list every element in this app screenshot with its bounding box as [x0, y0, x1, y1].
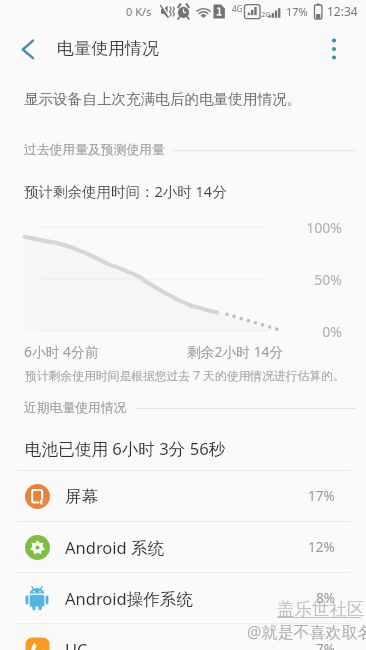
button[interactable]: Android操作系统: [0, 573, 366, 623]
staticText: 盖乐世社区: [277, 598, 365, 620]
staticText: 6小时 4分前: [24, 342, 99, 361]
staticText: 屏幕: [65, 486, 98, 507]
staticText: 17%: [308, 487, 335, 505]
staticText: @就是不喜欢取名: [247, 621, 366, 643]
staticText: 0 K/s: [126, 4, 152, 19]
staticText: 预计剩余使用时间是根据您过去 7 天的使用情况进行估算的。: [25, 367, 345, 383]
staticText: 过去使用量及预测使用量: [24, 142, 165, 158]
button[interactable]: UC: [0, 624, 366, 650]
staticText: 4G: [232, 3, 243, 14]
staticText: 剩余2小时 14分: [187, 342, 284, 361]
staticText: 显示设备自上次充满电后的电量使用情况。: [24, 90, 302, 108]
button[interactable]: More options: [313, 28, 354, 69]
staticText: 100%: [262, 218, 342, 237]
staticText: 17%: [286, 4, 308, 19]
staticText: 电池已使用 6小时 3分 56秒: [25, 437, 226, 460]
staticText: 0%: [262, 322, 342, 341]
staticText: 7%: [316, 640, 335, 650]
button[interactable]: Back: [7, 28, 48, 69]
staticText: 50%: [262, 270, 342, 289]
button[interactable]: 屏幕: [0, 471, 366, 521]
staticText: UC: [65, 638, 88, 650]
staticText: 12%: [308, 538, 335, 556]
button[interactable]: Android 系统: [0, 522, 366, 572]
staticText: 8%: [316, 589, 335, 607]
staticText: Android 系统: [65, 536, 165, 559]
staticText: 电量使用情况: [57, 38, 159, 59]
staticText: 12:34: [327, 3, 358, 19]
staticText: Android操作系统: [65, 587, 193, 610]
staticText: 2G: [261, 9, 271, 19]
staticText: 预计剩余使用时间：2小时 14分: [24, 181, 227, 201]
staticText: 近期电量使用情况: [24, 400, 127, 416]
